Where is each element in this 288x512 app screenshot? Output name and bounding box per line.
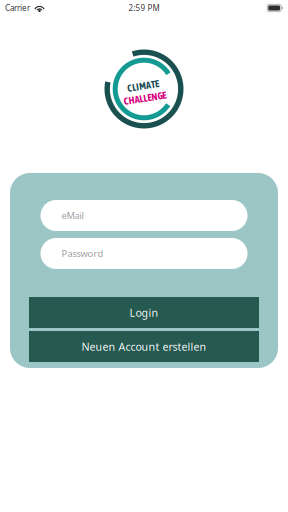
staticText: Carrier [5,3,30,13]
staticText: Login [129,305,158,320]
button[interactable]: Neuen Account erstellen [29,331,259,362]
staticText: Neuen Account erstellen [81,339,206,354]
staticText: CLIMATE [128,80,160,91]
staticText: Password [61,247,103,260]
staticText: 2:59 PM [128,3,159,13]
button[interactable]: eMail [40,200,247,231]
button[interactable]: Login [29,297,259,328]
button[interactable]: Password [40,238,247,269]
staticText: eMail [61,209,83,222]
staticText: CHALLENGE [122,92,165,104]
